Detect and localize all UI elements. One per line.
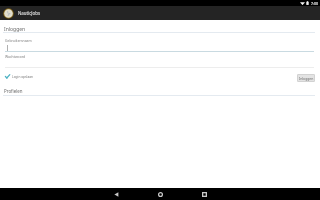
button[interactable]: Inloggen xyxy=(297,74,315,82)
staticText: Gebruikersnaam xyxy=(5,38,32,43)
staticText: Inloggen xyxy=(4,26,26,33)
staticText: 7:00 xyxy=(311,1,319,6)
button[interactable]: Login opslaan xyxy=(3,73,35,80)
staticText: Profielen xyxy=(4,88,23,94)
button[interactable]: Recent apps xyxy=(190,188,218,200)
staticText: Login opslaan xyxy=(12,75,33,79)
staticText: Inloggen xyxy=(299,76,314,81)
button[interactable]: Home xyxy=(146,188,174,200)
staticText: NauticJobs xyxy=(18,10,40,16)
button[interactable]: Back xyxy=(102,188,130,200)
staticText: Wachtwoord xyxy=(5,54,26,59)
